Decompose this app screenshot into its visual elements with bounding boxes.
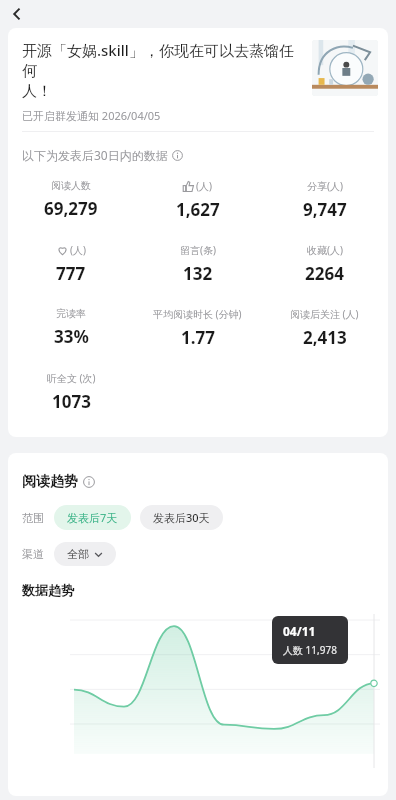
staticText: 9,747 bbox=[303, 198, 347, 221]
staticText: 数据趋势 bbox=[22, 582, 74, 598]
staticText: (人) bbox=[70, 243, 86, 257]
staticText: 发表后30天 bbox=[153, 510, 210, 525]
staticText: 阅读人数 bbox=[51, 179, 91, 192]
staticText: 132 bbox=[183, 262, 213, 285]
staticText: 阅读趋势 bbox=[22, 473, 78, 491]
staticText: 完读率 bbox=[56, 307, 86, 320]
button[interactable]: 发表后30天 bbox=[140, 505, 223, 530]
other: Info bbox=[172, 150, 183, 161]
staticText: 发表后7天 bbox=[67, 510, 118, 525]
staticText: 收藏(人) bbox=[307, 243, 343, 257]
staticText: 全部 bbox=[67, 547, 89, 561]
button[interactable]: Article cover bbox=[312, 40, 378, 96]
staticText: 分享(人) bbox=[307, 179, 343, 193]
button[interactable]: Back bbox=[0, 0, 34, 28]
button[interactable]: 发表后7天 bbox=[54, 505, 131, 530]
button[interactable]: 全部 bbox=[54, 542, 116, 566]
staticText: 2,413 bbox=[303, 326, 347, 349]
staticText: 阅读后关注 (人) bbox=[290, 307, 359, 321]
other: Info bbox=[83, 476, 95, 488]
staticText: 已开启群发通知 2026/04/05 bbox=[22, 108, 161, 123]
staticText: 留言(条) bbox=[180, 243, 216, 257]
staticText: 04/11 bbox=[283, 623, 316, 639]
staticText: 33% bbox=[54, 325, 89, 348]
staticText: 1.77 bbox=[181, 326, 215, 349]
staticText: (人) bbox=[196, 179, 212, 193]
staticText: 人数 11,978 bbox=[283, 643, 337, 657]
staticText: 开源「女娲.skill」，你现在可以去蒸馏任何 人！ bbox=[22, 40, 304, 101]
staticText: 777 bbox=[56, 262, 86, 285]
staticText: 渠道 bbox=[22, 547, 44, 561]
staticText: 以下为发表后30日内的数据 bbox=[22, 147, 168, 163]
staticText: 平均阅读时长 (分钟) bbox=[153, 307, 242, 321]
staticText: 范围 bbox=[22, 511, 44, 525]
staticText: 1,627 bbox=[176, 198, 220, 221]
staticText: 69,279 bbox=[44, 197, 98, 220]
staticText: 2264 bbox=[305, 262, 344, 285]
staticText: 听全文 (次) bbox=[47, 371, 96, 385]
staticText: 1073 bbox=[52, 390, 91, 413]
